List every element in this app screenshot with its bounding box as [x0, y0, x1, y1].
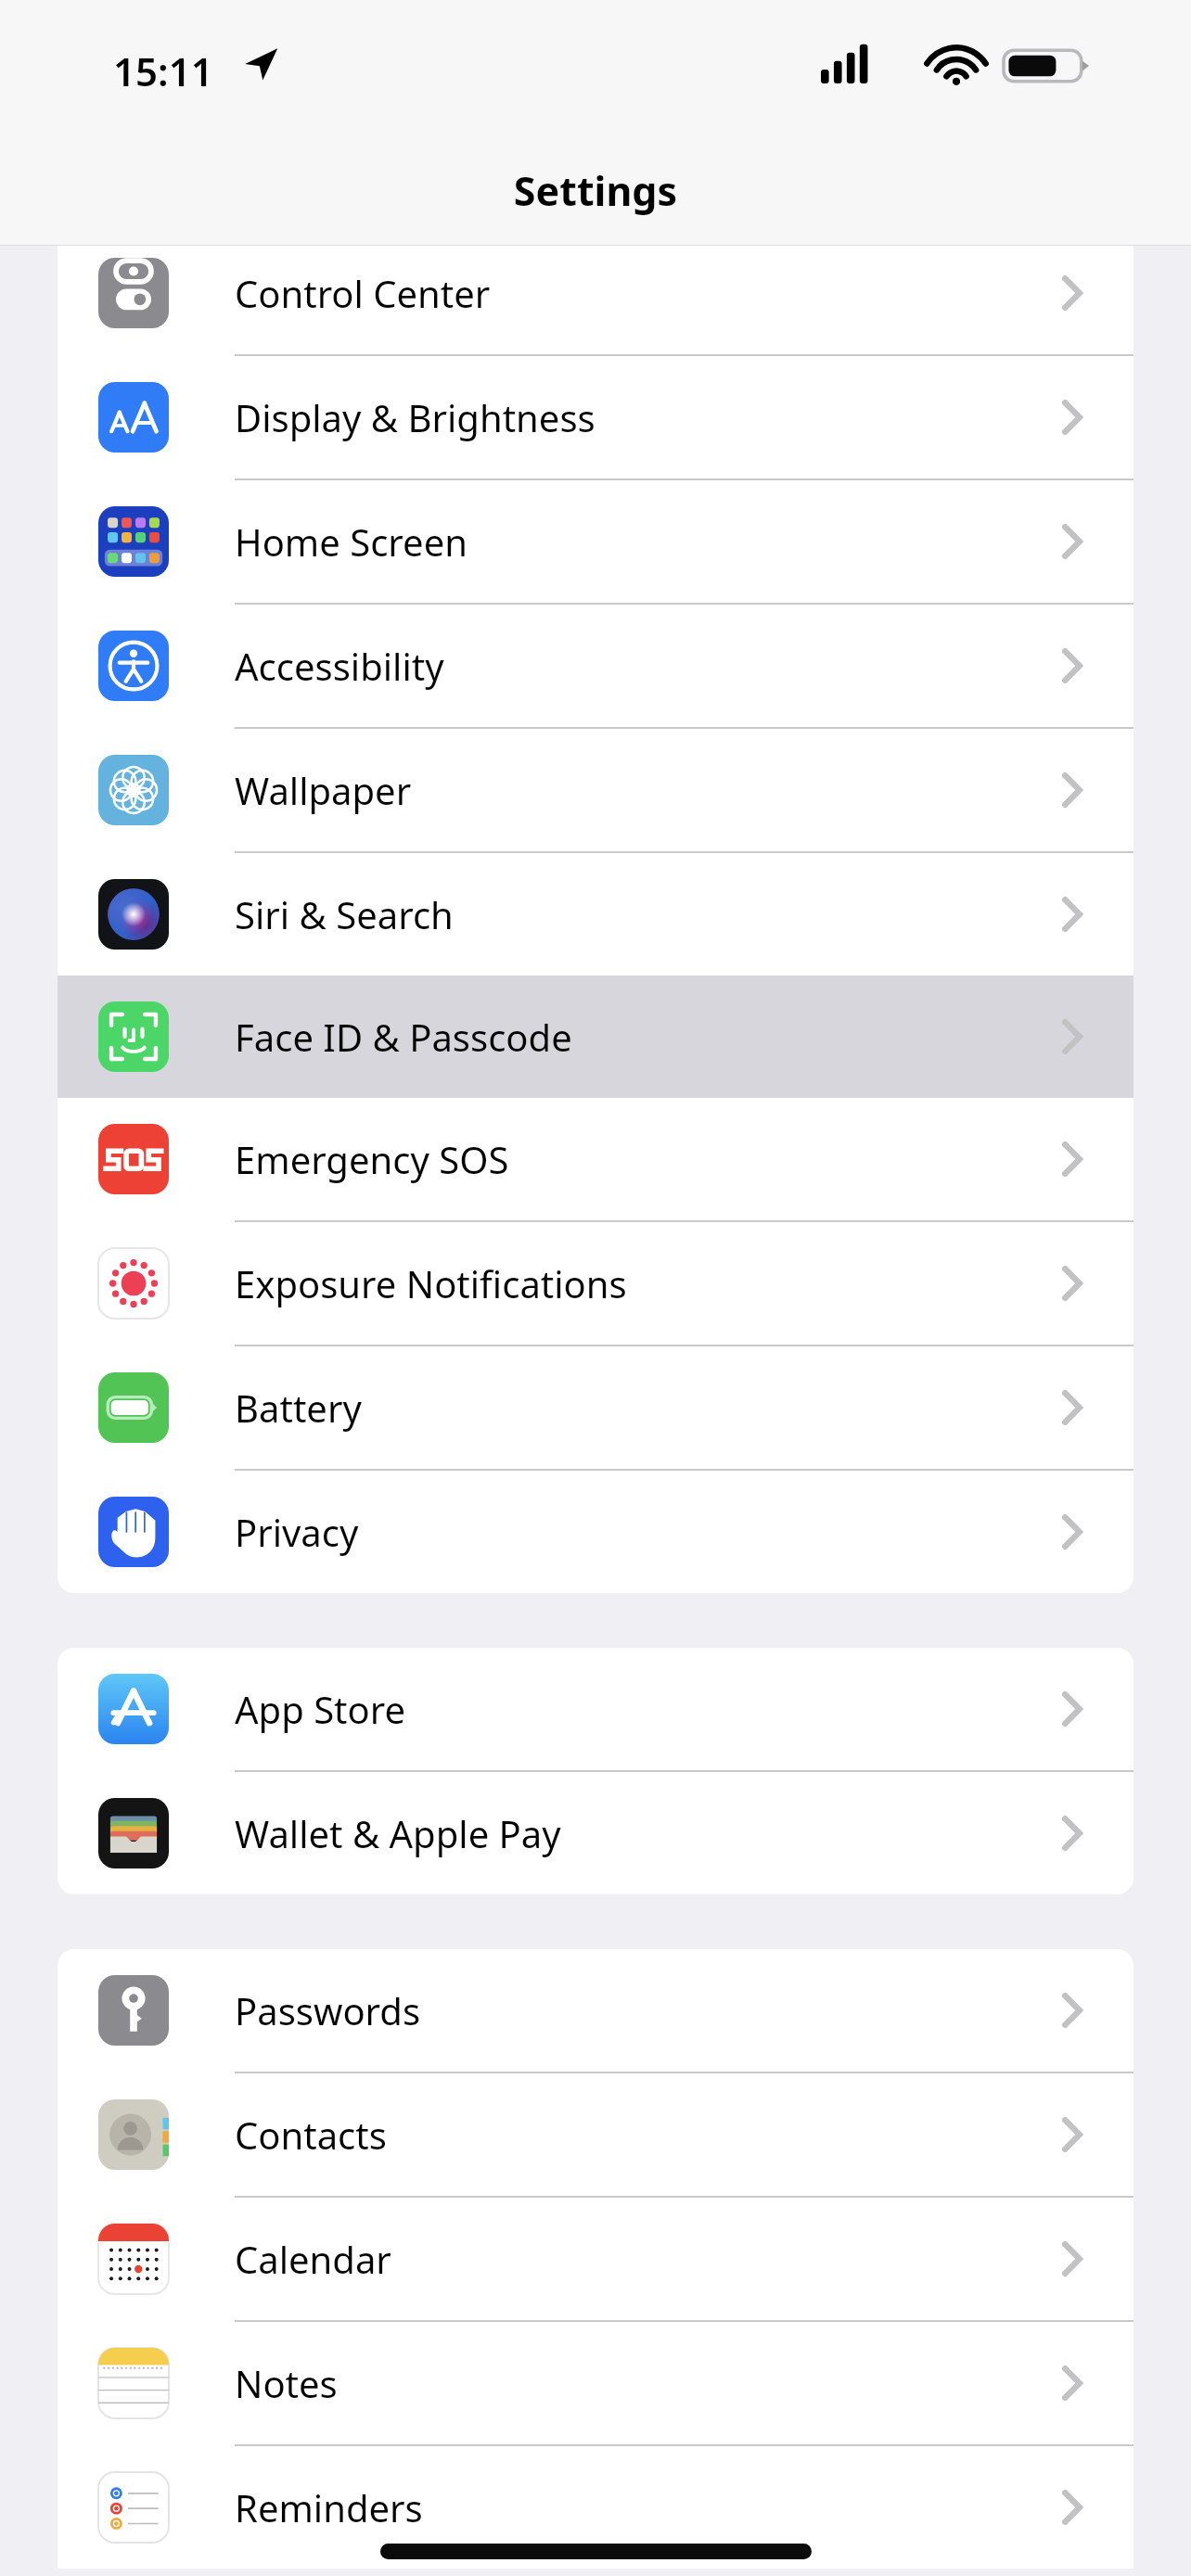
staticText: Calendar: [235, 2234, 391, 2284]
staticText: App Store: [235, 1684, 406, 1734]
button[interactable]: Contacts: [58, 2073, 1133, 2196]
staticText: Settings: [0, 163, 1191, 218]
staticText: Exposure Notifications: [235, 1258, 627, 1308]
staticText: 15:11: [113, 45, 213, 97]
button[interactable]: Reminders: [58, 2446, 1133, 2569]
button[interactable]: Wallpaper: [58, 729, 1133, 851]
button[interactable]: Emergency SOS: [58, 1098, 1133, 1220]
button[interactable]: Battery: [58, 1346, 1133, 1469]
button[interactable]: Home Screen: [58, 480, 1133, 603]
staticText: Contacts: [235, 2110, 387, 2160]
button[interactable]: App Store: [58, 1648, 1133, 1770]
button[interactable]: Notes: [58, 2322, 1133, 2444]
button[interactable]: Accessibility: [58, 605, 1133, 727]
staticText: Passwords: [235, 1985, 421, 2035]
button[interactable]: Siri & Search: [58, 853, 1133, 976]
button[interactable]: Display & Brightness: [58, 356, 1133, 478]
staticText: Siri & Search: [235, 889, 454, 939]
button[interactable]: Face ID & Passcode: [58, 976, 1133, 1098]
staticText: Home Screen: [235, 516, 467, 567]
staticText: Display & Brightness: [235, 392, 595, 442]
button[interactable]: Exposure Notifications: [58, 1222, 1133, 1345]
button[interactable]: Wallet & Apple Pay: [58, 1772, 1133, 1894]
staticText: Reminders: [235, 2482, 423, 2532]
button[interactable]: Privacy: [58, 1471, 1133, 1593]
button[interactable]: Passwords: [58, 1949, 1133, 2072]
staticText: Accessibility: [235, 641, 444, 691]
staticText: Wallpaper: [235, 765, 412, 815]
staticText: Notes: [235, 2358, 338, 2408]
staticText: Wallet & Apple Pay: [235, 1808, 561, 1858]
button[interactable]: Control Center: [58, 232, 1133, 354]
staticText: Battery: [235, 1383, 362, 1433]
staticText: Face ID & Passcode: [235, 1012, 572, 1062]
button[interactable]: Calendar: [58, 2198, 1133, 2320]
staticText: Privacy: [235, 1507, 359, 1557]
staticText: Control Center: [235, 268, 491, 318]
staticText: Emergency SOS: [235, 1134, 509, 1184]
